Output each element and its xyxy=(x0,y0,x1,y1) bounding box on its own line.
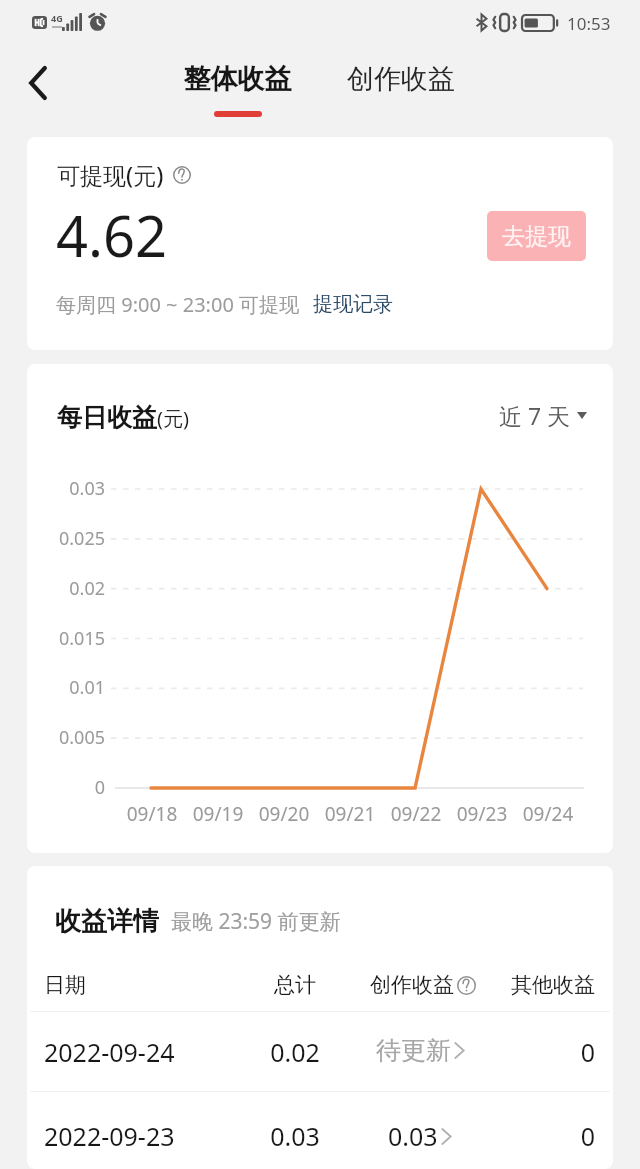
staticText: 0.015 xyxy=(27,626,105,651)
button[interactable]: 2022-09-24 xyxy=(27,1012,613,1091)
staticText: 日期 xyxy=(44,972,86,998)
staticText: 最晚 23:59 前更新 xyxy=(171,907,341,936)
button[interactable]: 提现记录 xyxy=(313,292,393,317)
button[interactable]: 2022-09-23 xyxy=(27,1092,613,1169)
staticText: 可提现(元) xyxy=(57,159,164,190)
staticText: 0.02 xyxy=(27,576,105,601)
staticText: 2022-09-23 xyxy=(44,1119,175,1153)
staticText: 每日收益 xyxy=(57,402,157,433)
staticText: 09/21 xyxy=(317,801,383,827)
staticText: 0.03 xyxy=(235,1119,355,1153)
staticText: 其他收益 xyxy=(435,972,595,998)
staticText: 09/20 xyxy=(251,801,317,827)
staticText: 0 xyxy=(435,1035,595,1069)
staticText: 提现记录 xyxy=(313,292,393,317)
staticText: 0 xyxy=(27,775,105,800)
staticText: 创作收益 xyxy=(370,972,454,998)
staticText: 4G xyxy=(51,12,63,24)
staticText: 10:53 xyxy=(567,12,611,35)
button[interactable]: 整体收益 xyxy=(175,56,300,117)
button[interactable]: 创作收益 xyxy=(338,56,464,102)
staticText: 0.02 xyxy=(235,1035,355,1069)
button[interactable]: Back xyxy=(12,57,64,109)
staticText: 近 7 天 xyxy=(499,400,571,431)
staticText: (元) xyxy=(157,405,189,432)
staticText: 创作收益 xyxy=(347,62,455,96)
staticText: 09/24 xyxy=(515,801,581,827)
staticText: 去提现 xyxy=(502,222,571,251)
staticText: 2022-09-24 xyxy=(44,1035,175,1069)
button[interactable]: 近 7 天 xyxy=(499,400,587,431)
staticText: 0.01 xyxy=(27,675,105,700)
staticText: 收益详情 xyxy=(55,905,159,938)
staticText: 09/18 xyxy=(119,801,185,827)
staticText: 每周四 9:00 ~ 23:00 可提现 xyxy=(56,291,300,318)
staticText: 4.62 xyxy=(56,197,168,273)
staticText: 0.005 xyxy=(27,725,105,750)
staticText: 整体收益 xyxy=(175,62,300,96)
staticText: 0.03 xyxy=(388,1119,438,1153)
staticText: 09/23 xyxy=(449,801,515,827)
staticText: 0.025 xyxy=(27,526,105,551)
staticText: 总计 xyxy=(235,972,355,998)
staticText: 0.03 xyxy=(27,476,105,501)
staticText: 待更新 xyxy=(376,1035,451,1066)
staticText: 09/19 xyxy=(185,801,251,827)
staticText: 0 xyxy=(435,1119,595,1153)
staticText: 09/22 xyxy=(383,801,449,827)
button[interactable]: 去提现 xyxy=(487,211,586,261)
